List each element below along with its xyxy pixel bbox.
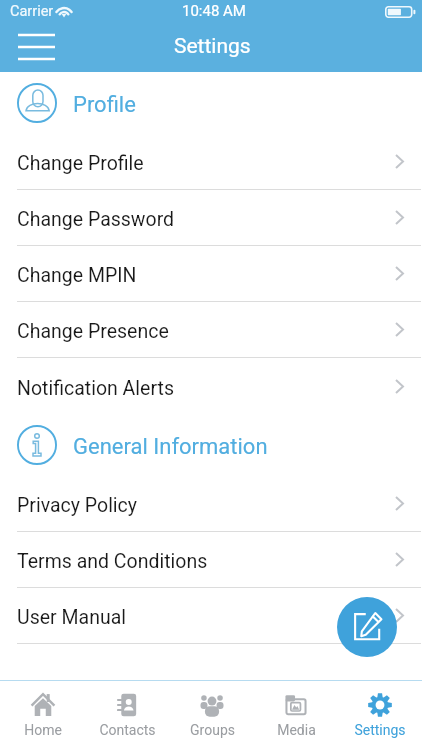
staticText: Terms and Conditions	[17, 550, 208, 573]
staticText: Groups	[190, 722, 235, 738]
staticText: Privacy Policy	[17, 494, 138, 517]
button[interactable]: Change Password	[0, 190, 422, 245]
button[interactable]: Home	[0, 693, 85, 738]
button[interactable]: Groups	[170, 693, 254, 738]
button[interactable]: Menu	[6, 24, 68, 70]
button[interactable]: Terms and Conditions	[0, 532, 422, 587]
button[interactable]: Privacy Policy	[0, 476, 422, 531]
staticText: Change Profile	[17, 152, 144, 175]
button[interactable]: Media	[254, 693, 338, 738]
button[interactable]: Compose	[337, 597, 397, 657]
staticText: Media	[277, 722, 316, 738]
staticText: 10:48 AM	[182, 2, 246, 20]
staticText: Profile	[73, 92, 136, 118]
button[interactable]: User Manual	[0, 588, 422, 643]
button[interactable]: Contacts	[85, 693, 170, 738]
button[interactable]: Change MPIN	[0, 246, 422, 301]
button[interactable]: Change Presence	[0, 302, 422, 357]
staticText: Settings	[354, 722, 406, 738]
staticText: Settings	[174, 34, 251, 59]
staticText: User Manual	[17, 606, 126, 629]
button[interactable]: Change Profile	[0, 134, 422, 189]
staticText: Change MPIN	[17, 264, 137, 287]
button[interactable]: Settings	[338, 693, 422, 738]
staticText: Change Presence	[17, 320, 169, 343]
staticText: Contacts	[99, 722, 156, 738]
staticText: Home	[24, 722, 62, 738]
button[interactable]: Notification Alerts	[0, 358, 422, 414]
staticText: Change Password	[17, 208, 175, 231]
staticText: General Information	[73, 434, 268, 460]
staticText: Notification Alerts	[17, 377, 174, 400]
staticText: Carrier	[10, 3, 54, 20]
